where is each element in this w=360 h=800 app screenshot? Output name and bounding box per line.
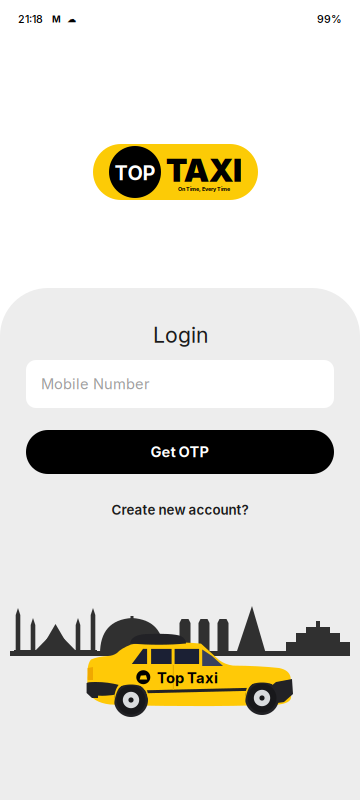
staticText: Login: [153, 322, 209, 348]
staticText: TAXI: [166, 151, 242, 189]
staticText: 99%: [317, 12, 342, 25]
staticText: On Time, Every Time: [178, 186, 230, 192]
staticText: 21:18: [18, 12, 43, 25]
staticText: Create new account?: [111, 502, 248, 518]
button[interactable]: Get OTP: [26, 430, 334, 474]
button[interactable]: Create new account?: [100, 500, 260, 520]
staticText: Get OTP: [150, 443, 209, 461]
staticText: TOP: [114, 161, 155, 185]
staticText: Mobile Number: [41, 375, 150, 393]
staticText: ☁: [67, 14, 76, 24]
staticText: M: [52, 13, 61, 25]
staticText: Top Taxi: [157, 669, 218, 687]
